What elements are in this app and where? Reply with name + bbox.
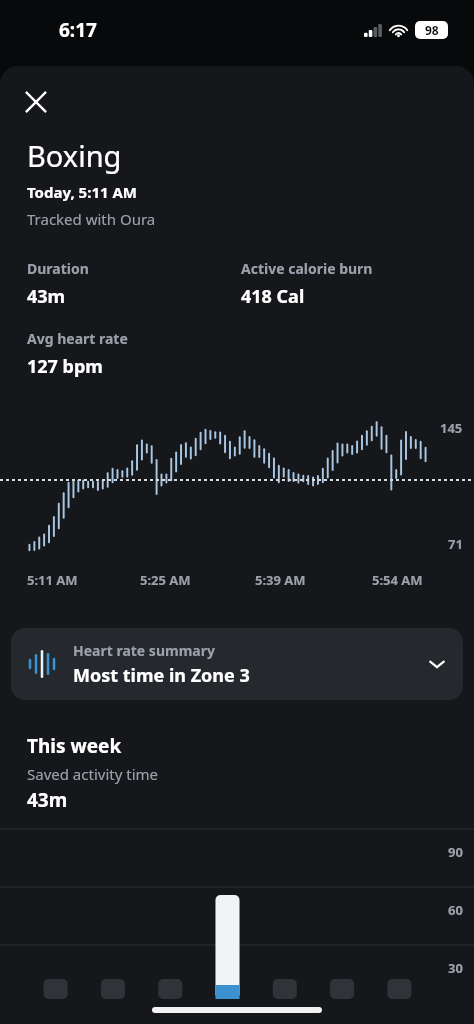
staticText: This week xyxy=(27,733,122,759)
staticText: 5:11 AM xyxy=(27,571,78,589)
staticText: 418 Cal xyxy=(241,284,305,309)
staticText: 30 xyxy=(448,959,463,977)
staticText: 127 bpm xyxy=(27,354,103,379)
staticText: Most time in Zone 3 xyxy=(73,663,250,688)
staticText: Avg heart rate xyxy=(27,329,128,348)
staticText: Duration xyxy=(27,259,89,278)
staticText: 43m xyxy=(27,284,66,309)
staticText: 60 xyxy=(448,901,463,919)
button[interactable]: Close xyxy=(14,80,58,124)
staticText: 43m xyxy=(27,787,68,813)
staticText: 5:54 AM xyxy=(372,571,423,589)
button[interactable]: Heart rate summary xyxy=(11,628,463,700)
staticText: Saved activity time xyxy=(27,764,158,784)
staticText: 5:25 AM xyxy=(140,571,191,589)
staticText: Tracked with Oura xyxy=(27,209,156,229)
staticText: 98 xyxy=(425,22,439,38)
staticText: Today, 5:11 AM xyxy=(27,182,137,202)
staticText: Heart rate summary xyxy=(73,641,215,660)
staticText: Boxing xyxy=(27,136,122,175)
staticText: 71 xyxy=(448,535,463,553)
staticText: Active calorie burn xyxy=(241,259,373,278)
staticText: 6:17 xyxy=(59,17,97,43)
staticText: 145 xyxy=(440,419,463,437)
staticText: 5:39 AM xyxy=(255,571,306,589)
staticText: 90 xyxy=(448,843,463,861)
